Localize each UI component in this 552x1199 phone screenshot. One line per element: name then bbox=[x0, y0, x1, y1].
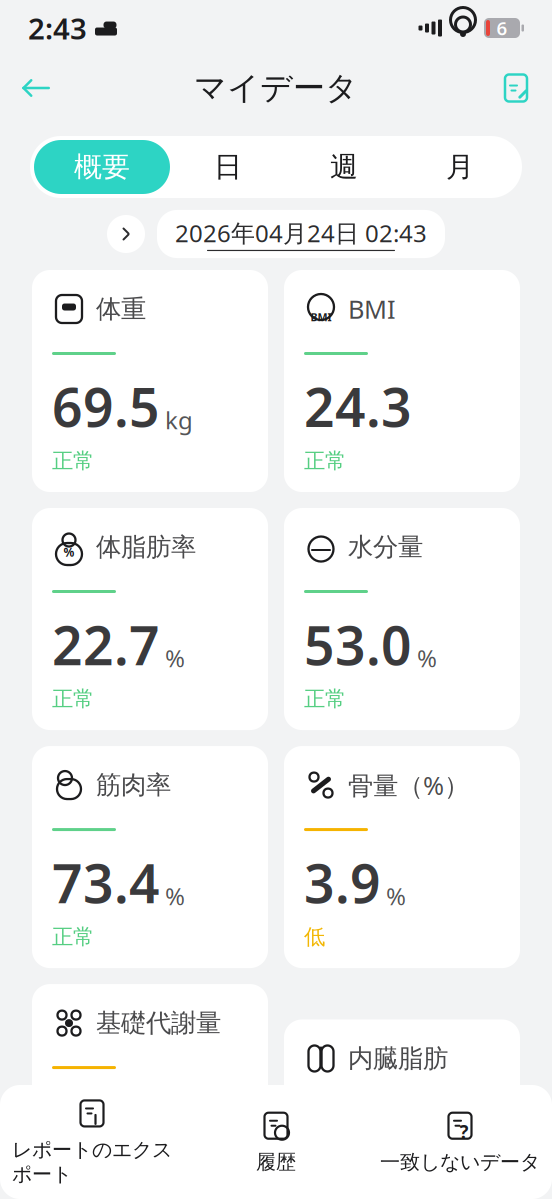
staticText: 正常 bbox=[52, 686, 94, 712]
button[interactable]: 週 bbox=[286, 140, 402, 194]
staticText: 体脂肪率 bbox=[96, 531, 196, 563]
button[interactable]: 基礎代謝量 bbox=[32, 984, 268, 1199]
staticText: 骨量（%） bbox=[348, 768, 469, 802]
staticText: 内臓脂肪 bbox=[348, 1043, 448, 1074]
staticText: 基礎代謝量 bbox=[96, 1007, 221, 1039]
staticText: 筋肉率 bbox=[96, 769, 171, 801]
staticText: BMI bbox=[310, 310, 331, 324]
staticText: 日 bbox=[214, 150, 242, 184]
staticText: % bbox=[417, 642, 437, 674]
staticText: 低 bbox=[304, 924, 325, 950]
button[interactable]: 水分量 bbox=[284, 508, 520, 730]
button[interactable]: 前の日 bbox=[107, 215, 145, 253]
staticText: 3.9 bbox=[304, 847, 381, 918]
button[interactable]: ? bbox=[368, 1110, 552, 1174]
staticText: 履歴 bbox=[256, 1150, 296, 1174]
staticText: 正常 bbox=[52, 924, 94, 950]
staticText: ? bbox=[459, 1119, 468, 1144]
button[interactable]: 編集 bbox=[490, 62, 542, 114]
staticText: BMI bbox=[348, 292, 396, 326]
staticText: 概要 bbox=[74, 150, 130, 184]
staticText: 2:43 bbox=[28, 8, 87, 47]
staticText: 週 bbox=[330, 150, 358, 184]
button[interactable]: BMI bbox=[284, 270, 520, 492]
button[interactable]: 筋肉率 bbox=[32, 746, 268, 968]
staticText: 月 bbox=[446, 150, 474, 184]
button[interactable]: 月 bbox=[402, 140, 518, 194]
button[interactable]: レポートのエクスポート bbox=[0, 1097, 184, 1186]
staticText: kg bbox=[165, 404, 193, 436]
staticText: 13.0 bbox=[304, 1120, 412, 1191]
staticText: レポートのエクスポート bbox=[12, 1137, 172, 1186]
button[interactable]: 体重 bbox=[32, 270, 268, 492]
staticText: マイデータ bbox=[194, 68, 358, 108]
staticText: 24.3 bbox=[304, 371, 412, 442]
staticText: % bbox=[386, 880, 406, 912]
button[interactable]: 概要 bbox=[34, 140, 170, 194]
button[interactable]: 履歴 bbox=[184, 1110, 368, 1174]
button[interactable]: 内臓脂肪 bbox=[284, 1019, 520, 1199]
staticText: % bbox=[63, 544, 74, 560]
staticText: 2026年04月24日 02:43 bbox=[175, 217, 427, 249]
button[interactable]: % bbox=[32, 508, 268, 730]
staticText: % bbox=[165, 642, 185, 674]
staticText: 正常 bbox=[304, 686, 346, 712]
button[interactable]: 日 bbox=[170, 140, 286, 194]
staticText: 53.0 bbox=[304, 609, 412, 680]
staticText: 1342.0 bbox=[52, 1085, 191, 1199]
staticText: 体重 bbox=[96, 293, 146, 324]
staticText: % bbox=[165, 880, 185, 912]
staticText: 水分量 bbox=[348, 531, 423, 563]
staticText: 73.4 bbox=[52, 847, 160, 918]
staticText: 69.5 bbox=[52, 371, 160, 442]
button[interactable]: 戻る bbox=[10, 62, 62, 114]
button[interactable]: 2026年04月24日 02:43 bbox=[157, 210, 445, 258]
staticText: 22.7 bbox=[52, 609, 160, 680]
staticText: 正常 bbox=[52, 448, 94, 474]
staticText: 一致しないデータ bbox=[380, 1150, 540, 1174]
staticText: 6 bbox=[496, 16, 507, 40]
staticText: 正常 bbox=[304, 448, 346, 474]
button[interactable]: 骨量（%） bbox=[284, 746, 520, 968]
